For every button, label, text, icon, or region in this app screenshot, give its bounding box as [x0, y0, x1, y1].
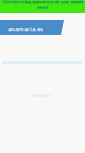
staticText: Click here to buy anamaria.es for your w…	[2, 0, 83, 10]
staticText: anamaria.es	[8, 25, 43, 33]
staticText: anamaria.es	[32, 93, 52, 98]
button[interactable]: Click here to buy anamaria.es for your w…	[0, 0, 85, 13]
